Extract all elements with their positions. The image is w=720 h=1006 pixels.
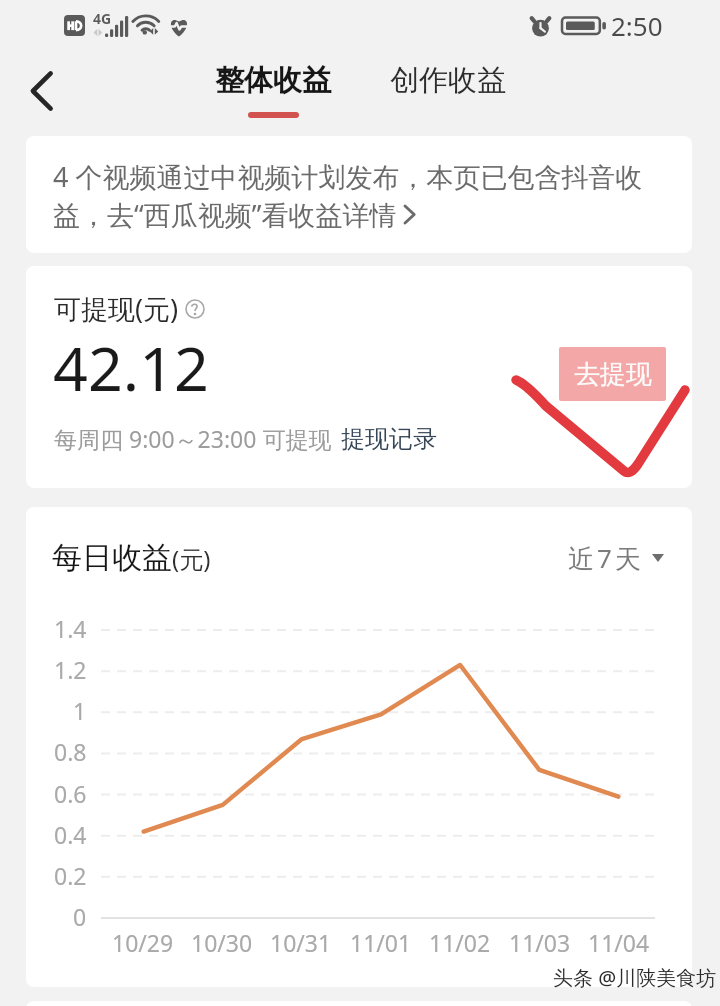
- staticText: 4 个视频通过中视频计划发布，本页已包含抖音收 益，去“西瓜视频”看收益详情: [53, 158, 643, 233]
- staticText: 1: [73, 695, 87, 725]
- button[interactable]: 提现记录: [341, 424, 437, 454]
- staticText: 可提现(元): [54, 290, 179, 327]
- staticText: 0.6: [54, 778, 87, 808]
- staticText: 0.8: [54, 736, 87, 766]
- staticText: 10/31: [270, 927, 332, 958]
- staticText: 创作收益: [390, 62, 506, 99]
- button[interactable]: Back: [14, 63, 70, 119]
- button[interactable]: 近7天: [568, 540, 664, 576]
- staticText: 近7天: [568, 540, 644, 576]
- staticText: 整体收益: [215, 62, 331, 99]
- staticText: 每日收益: [52, 539, 172, 577]
- button[interactable]: 整体收益: [205, 62, 341, 118]
- staticText: 11/04: [588, 927, 650, 958]
- staticText: 4G: [93, 9, 112, 28]
- staticText: 提现记录: [341, 424, 437, 454]
- staticText: 0.2: [54, 860, 87, 890]
- staticText: 1.4: [54, 613, 87, 643]
- staticText: 0.4: [54, 819, 87, 849]
- staticText: 10/30: [191, 927, 253, 958]
- staticText: 头条 @川陕美食坊: [553, 964, 717, 991]
- staticText: 42.12: [53, 326, 209, 409]
- staticText: (元): [172, 542, 211, 575]
- staticText: 11/01: [350, 927, 412, 958]
- button[interactable]: 创作收益: [380, 62, 516, 99]
- staticText: 10/29: [112, 927, 174, 958]
- button[interactable]: 去提现: [559, 347, 666, 401]
- button[interactable]: 4 个视频通过中视频计划发布，本页已包含抖音收 益，去“西瓜视频”看收益详情: [26, 136, 692, 253]
- staticText: 每周四 9:00～23:00 可提现: [54, 423, 332, 454]
- staticText: 去提现: [574, 358, 652, 391]
- staticText: 1.2: [54, 654, 87, 684]
- staticText: 11/02: [429, 927, 491, 958]
- staticText: 0: [73, 901, 87, 931]
- staticText: 2:50: [611, 8, 663, 43]
- staticText: 11/03: [509, 927, 571, 958]
